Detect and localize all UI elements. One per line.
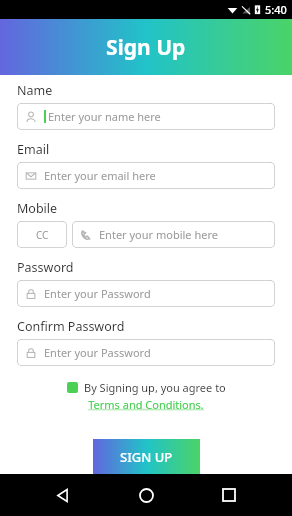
staticText: SIGN UP — [120, 448, 173, 466]
staticText: Name — [17, 82, 53, 99]
staticText: 5:40 — [265, 2, 287, 17]
button[interactable]: Back — [43, 475, 83, 515]
button[interactable]: Enter your Password — [17, 339, 275, 366]
staticText: Terms and Conditions. — [88, 397, 204, 412]
staticText: CC — [36, 228, 49, 242]
staticText: Mobile — [17, 200, 58, 217]
staticText: Password — [17, 259, 74, 276]
button[interactable]: Recent apps — [209, 475, 249, 515]
button[interactable]: Enter your email here — [17, 162, 275, 189]
staticText: Enter your mobile here — [99, 227, 218, 242]
button[interactable]: Terms and Conditions. — [88, 397, 204, 412]
staticText: Confirm Password — [17, 318, 125, 335]
button[interactable]: Home — [126, 475, 166, 515]
button[interactable]: Enter your mobile here — [72, 221, 275, 248]
staticText: Email — [17, 141, 50, 158]
staticText: By Signing up, you agree to — [84, 380, 226, 395]
staticText: Enter your Password — [44, 345, 151, 360]
button[interactable]: Enter your name here — [17, 103, 275, 130]
button[interactable]: CC — [17, 221, 67, 248]
button[interactable]: Agree to terms checkbox — [67, 382, 78, 393]
button[interactable]: SIGN UP — [93, 439, 200, 474]
staticText: Enter your Password — [44, 286, 151, 301]
staticText: Sign Up — [106, 33, 186, 62]
staticText: Enter your name here — [48, 109, 161, 124]
staticText: Enter your email here — [44, 168, 156, 183]
button[interactable]: Enter your Password — [17, 280, 275, 307]
